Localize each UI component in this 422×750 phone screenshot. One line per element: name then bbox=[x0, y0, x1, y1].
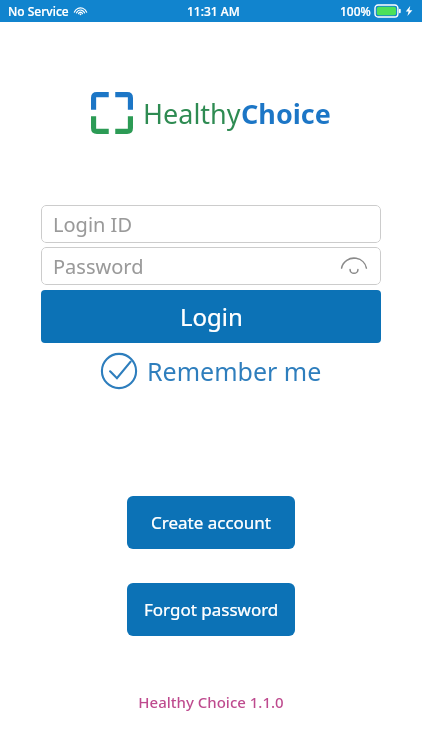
button[interactable]: Password bbox=[41, 247, 381, 285]
staticText: Healthy Choice 1.1.0 bbox=[138, 692, 284, 712]
button[interactable]: Login ID bbox=[41, 205, 381, 243]
button[interactable]: Create account bbox=[127, 496, 295, 549]
staticText: Password bbox=[53, 253, 144, 280]
staticText: Healthy bbox=[143, 95, 241, 132]
staticText: Choice bbox=[241, 95, 331, 132]
staticText: Remember me bbox=[147, 354, 322, 388]
button[interactable]: Forgot password bbox=[127, 583, 295, 636]
staticText: 11:31 AM bbox=[187, 3, 240, 19]
staticText: Create account bbox=[151, 511, 271, 534]
button[interactable]: Remember me bbox=[96, 350, 326, 392]
button[interactable]: Show password bbox=[339, 251, 369, 281]
staticText: No Service bbox=[8, 3, 69, 19]
staticText: Login bbox=[180, 300, 243, 333]
staticText: 100% bbox=[340, 3, 371, 19]
button[interactable]: Login bbox=[41, 290, 381, 343]
staticText: Login ID bbox=[53, 211, 132, 238]
staticText: Forgot password bbox=[144, 598, 279, 621]
